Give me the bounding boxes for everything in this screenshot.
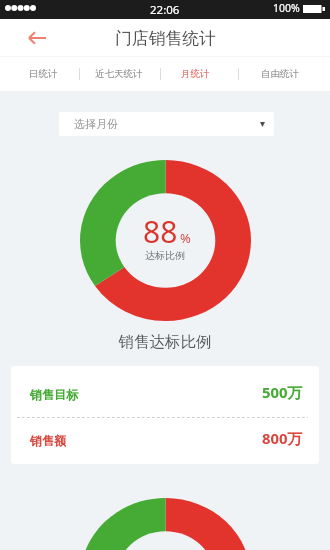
staticText: 22:06: [150, 2, 180, 18]
button[interactable]: 日统计: [25, 57, 62, 91]
button[interactable]: 自由统计: [257, 57, 303, 91]
staticText: 500万: [262, 382, 303, 402]
staticText: 800万: [262, 428, 303, 448]
staticText: 销售额: [30, 433, 66, 448]
staticText: 近七天统计: [95, 68, 143, 80]
staticText: 88: [143, 211, 178, 252]
staticText: 日统计: [29, 68, 58, 80]
staticText: 自由统计: [261, 68, 299, 80]
staticText: 达标比例: [0, 249, 330, 262]
staticText: 选择月份: [74, 117, 118, 131]
button[interactable]: 销售目标: [11, 366, 319, 417]
staticText: 销售目标: [30, 387, 78, 402]
button[interactable]: Back: [24, 26, 50, 50]
button[interactable]: 销售额: [11, 412, 319, 463]
button[interactable]: 近七天统计: [91, 57, 147, 91]
button[interactable]: 选择月份: [59, 112, 274, 136]
staticText: %: [180, 229, 191, 247]
staticText: 100%: [273, 1, 300, 15]
staticText: 月统计: [181, 68, 210, 80]
staticText: 门店销售统计: [115, 28, 216, 49]
staticText: 销售达标比例: [0, 332, 330, 352]
button[interactable]: 月统计: [177, 57, 214, 91]
